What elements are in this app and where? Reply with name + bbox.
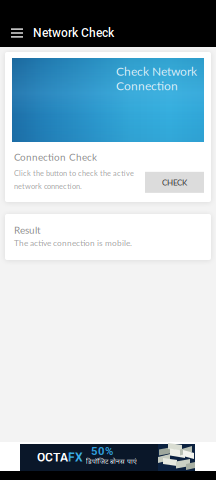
staticText: Check Network	[116, 64, 197, 78]
staticText: FX	[68, 450, 83, 465]
staticText: Result	[14, 224, 41, 236]
staticText: OCTA	[37, 450, 68, 465]
staticText: CHECK	[162, 177, 187, 187]
staticText: Network Check	[33, 26, 114, 40]
staticText: Connection	[116, 78, 178, 93]
button[interactable]: Open navigation menu	[0, 19, 23, 47]
staticText: Click the button to check the active	[14, 169, 134, 178]
staticText: 50%	[91, 444, 113, 458]
staticText: network connection.	[14, 182, 82, 190]
staticText: The active connection is mobile.	[14, 238, 132, 248]
staticText: डिपॉजिट बोनस पाएं	[86, 458, 137, 467]
button[interactable]: OctaFX: 50% deposit bonus advertisement	[20, 444, 195, 471]
button[interactable]: Network Check	[23, 19, 114, 47]
staticText: Connection Check	[14, 151, 97, 163]
button[interactable]: CHECK	[145, 172, 204, 193]
